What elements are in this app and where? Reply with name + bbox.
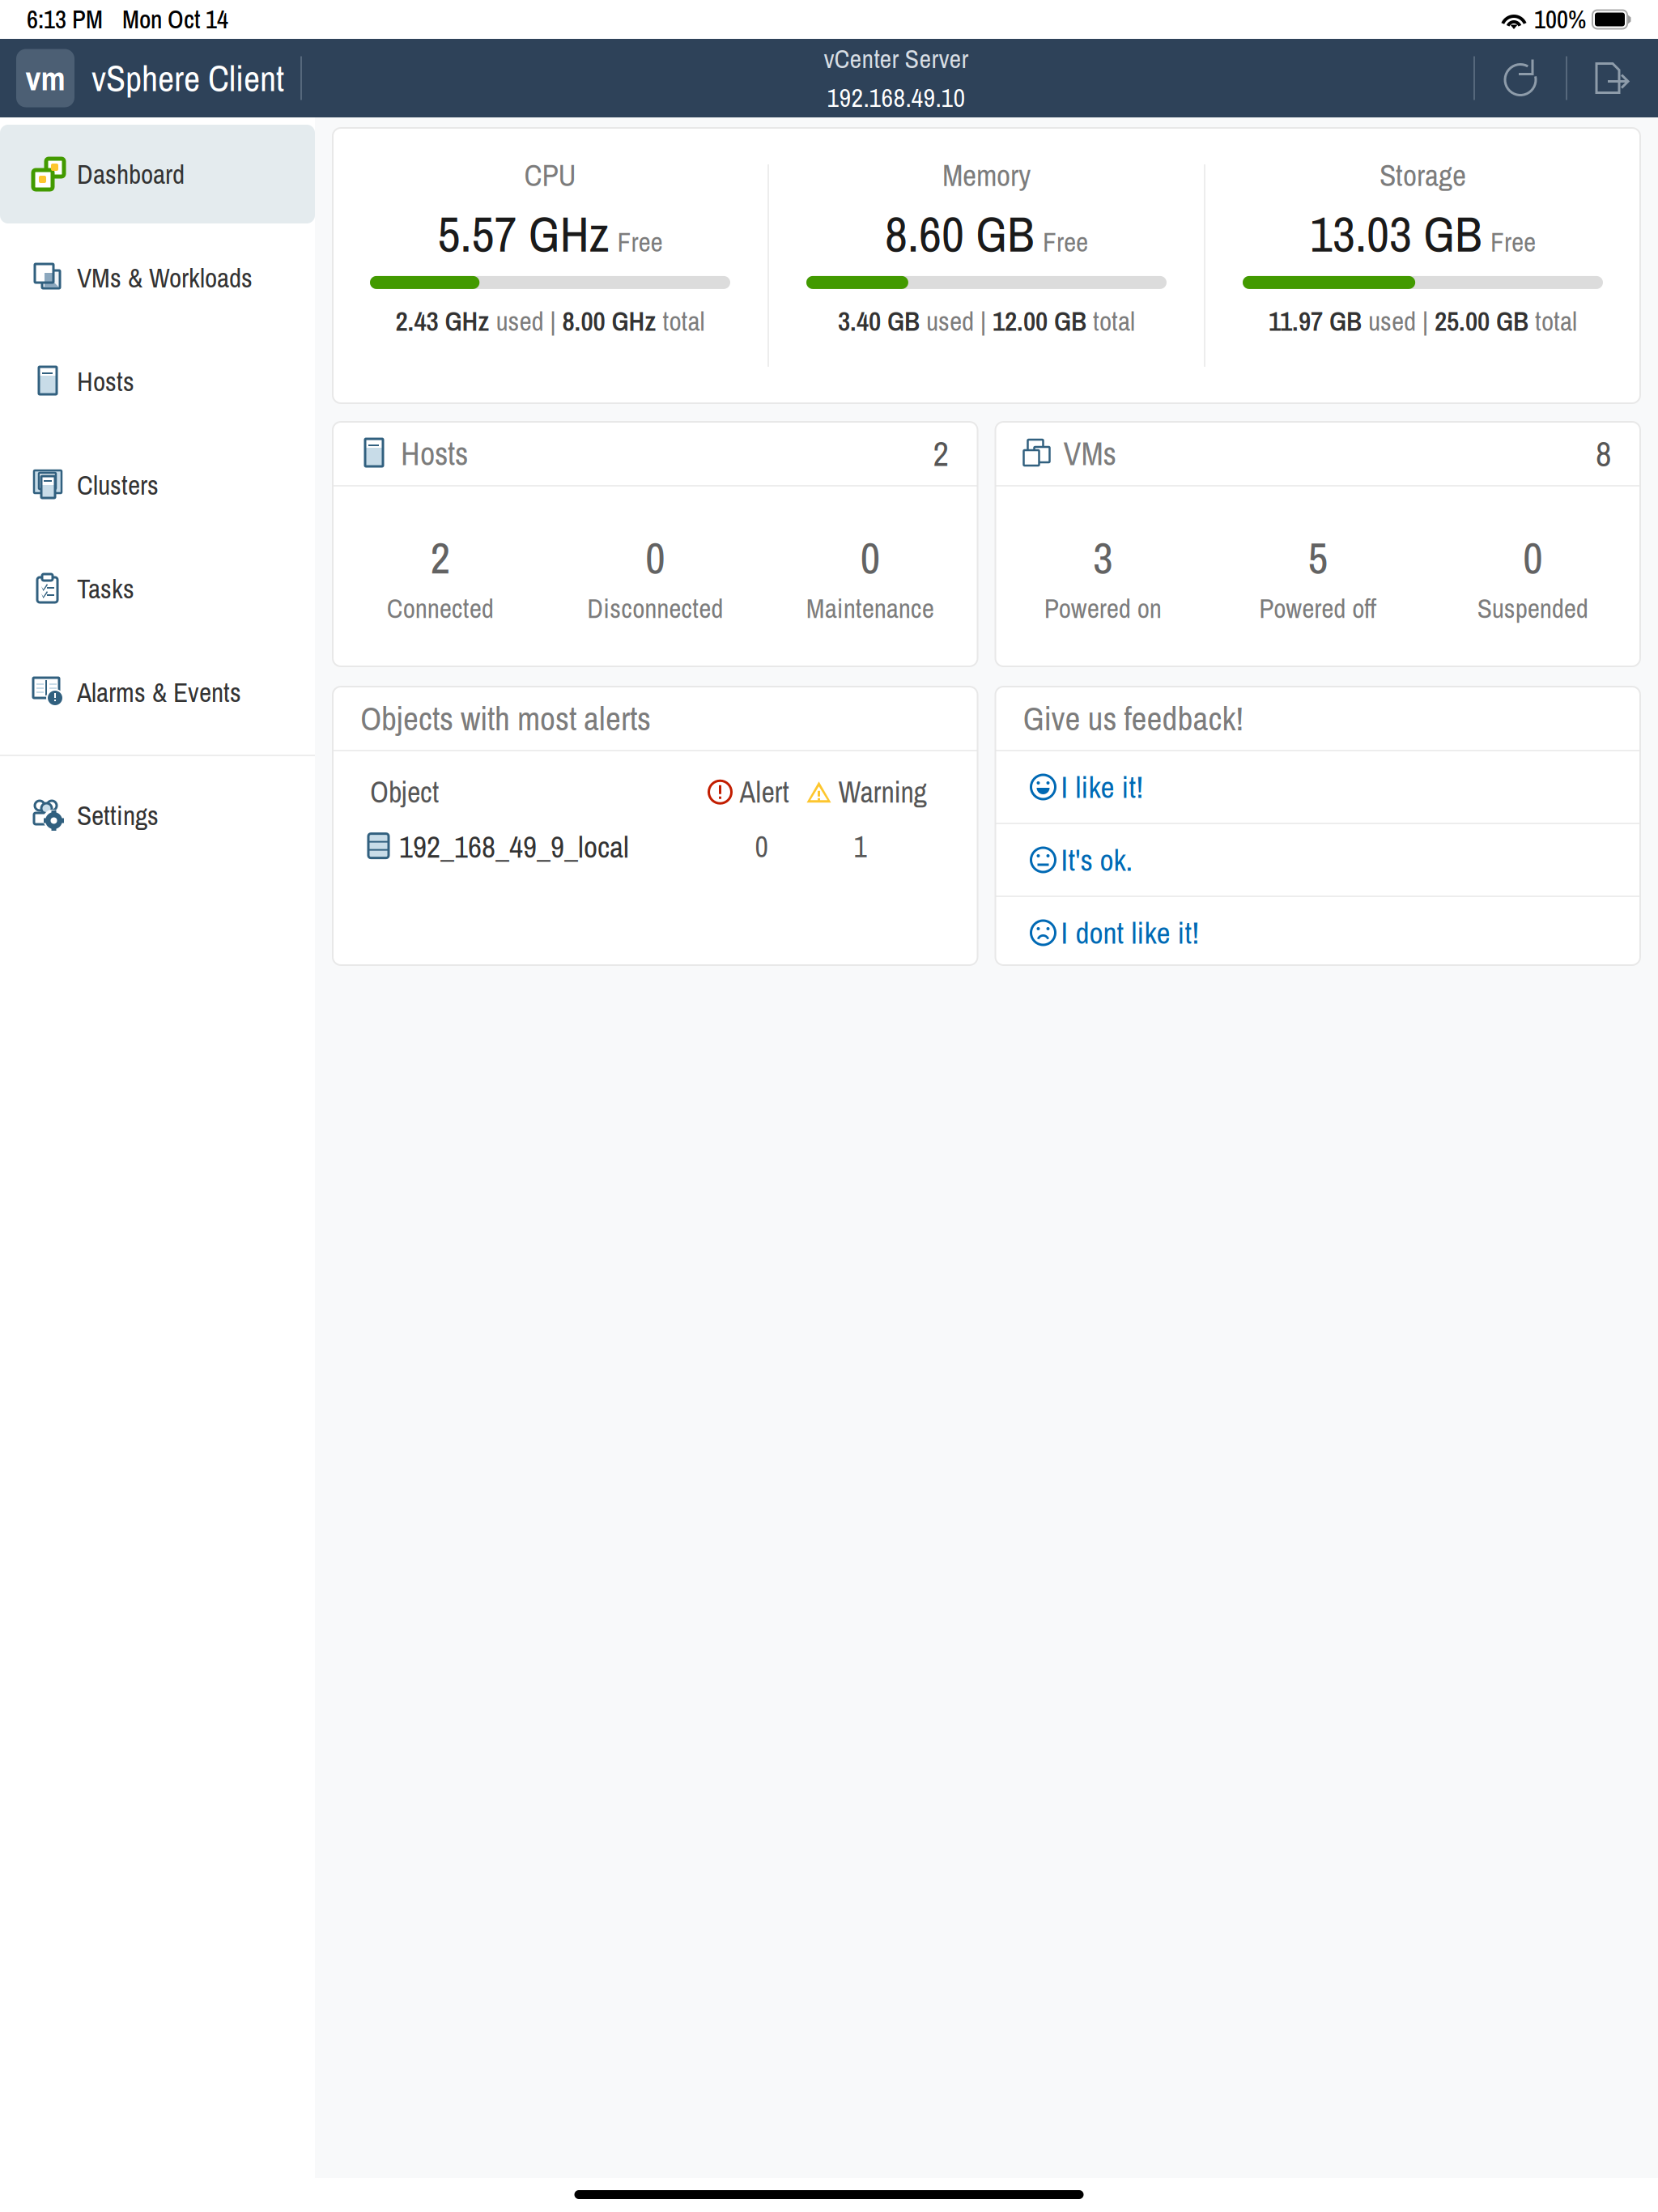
- staticText: total: [1528, 303, 1577, 339]
- button[interactable]: Hosts: [0, 330, 315, 433]
- staticText: 1: [854, 827, 867, 866]
- staticText: 8.60 GB: [885, 200, 1035, 267]
- staticText: Object: [370, 772, 439, 812]
- button[interactable]: Dashboard: [0, 122, 315, 226]
- staticText: Powered on: [1044, 590, 1162, 626]
- staticText: 0: [1523, 529, 1542, 587]
- staticText: 13.03 GB: [1310, 200, 1482, 267]
- staticText: 0: [860, 529, 880, 587]
- staticText: vCenter Server: [824, 41, 969, 76]
- staticText: Warning: [838, 772, 927, 812]
- staticText: Suspended: [1477, 590, 1588, 626]
- staticText: 11.97 GB: [1269, 303, 1362, 339]
- button[interactable]: vm: [0, 39, 300, 117]
- button[interactable]: Clusters: [0, 433, 315, 537]
- button[interactable]: VMs & Workloads: [0, 226, 315, 330]
- staticText: |: [980, 303, 993, 339]
- staticText: |: [550, 303, 562, 339]
- staticText: 3: [1093, 529, 1113, 587]
- button[interactable]: Log out: [1567, 39, 1658, 117]
- staticText: total: [1086, 303, 1135, 339]
- staticText: Tasks: [77, 570, 134, 607]
- staticText: 5: [1308, 529, 1328, 587]
- button[interactable]: I dont like it!: [995, 897, 1640, 968]
- staticText: 2: [933, 430, 948, 477]
- staticText: 8: [1596, 430, 1611, 477]
- staticText: 192_168_49_9_local: [399, 826, 629, 867]
- staticText: Give us feedback!: [1023, 696, 1243, 741]
- staticText: 12.00 GB: [993, 303, 1086, 339]
- staticText: 5.57 GHz: [438, 200, 609, 267]
- staticText: It's ok.: [1061, 840, 1133, 880]
- staticText: vm: [26, 56, 65, 101]
- staticText: I dont like it!: [1061, 912, 1199, 953]
- staticText: Storage: [1380, 155, 1466, 195]
- staticText: 2: [431, 529, 450, 587]
- staticText: VMs: [1063, 432, 1116, 475]
- button[interactable]: I like it!: [995, 751, 1640, 823]
- button[interactable]: Refresh: [1475, 39, 1566, 117]
- staticText: Alert: [740, 772, 789, 812]
- staticText: Settings: [77, 797, 159, 834]
- staticText: Memory: [942, 155, 1031, 195]
- staticText: Clusters: [77, 467, 159, 503]
- staticText: Disconnected: [587, 590, 723, 626]
- staticText: I like it!: [1061, 767, 1144, 807]
- button[interactable]: It's ok.: [995, 824, 1640, 895]
- staticText: Connected: [387, 590, 494, 626]
- staticText: used: [489, 303, 550, 339]
- staticText: Free: [1043, 224, 1088, 260]
- staticText: 192.168.49.10: [827, 80, 965, 115]
- button[interactable]: Tasks: [0, 537, 315, 640]
- staticText: Powered off: [1259, 590, 1376, 626]
- staticText: 2.43 GHz: [395, 303, 489, 339]
- staticText: 8.00 GHz: [562, 303, 656, 339]
- staticText: CPU: [524, 155, 576, 195]
- staticText: Alarms & Events: [77, 674, 241, 710]
- staticText: vSphere Client: [91, 54, 284, 102]
- staticText: Free: [617, 224, 663, 260]
- staticText: 6:13 PM: [27, 3, 103, 36]
- button[interactable]: Settings: [0, 764, 315, 867]
- staticText: total: [656, 303, 705, 339]
- staticText: 0: [645, 529, 665, 587]
- staticText: used: [1362, 303, 1422, 339]
- staticText: 25.00 GB: [1435, 303, 1528, 339]
- staticText: 100%: [1534, 3, 1586, 36]
- staticText: Hosts: [401, 432, 468, 475]
- staticText: used: [920, 303, 980, 339]
- staticText: 3.40 GB: [838, 303, 920, 339]
- staticText: 0: [755, 827, 768, 866]
- staticText: Free: [1490, 224, 1536, 260]
- staticText: Dashboard: [77, 156, 185, 192]
- staticText: VMs & Workloads: [77, 260, 253, 296]
- staticText: Objects with most alerts: [360, 696, 651, 741]
- button[interactable]: Alarms & Events: [0, 640, 315, 744]
- staticText: Hosts: [77, 363, 134, 400]
- staticText: Mon Oct 14: [122, 3, 228, 36]
- staticText: Maintenance: [806, 590, 934, 626]
- staticText: |: [1422, 303, 1435, 339]
- button[interactable]: 192_168_49_9_local: [333, 812, 978, 867]
